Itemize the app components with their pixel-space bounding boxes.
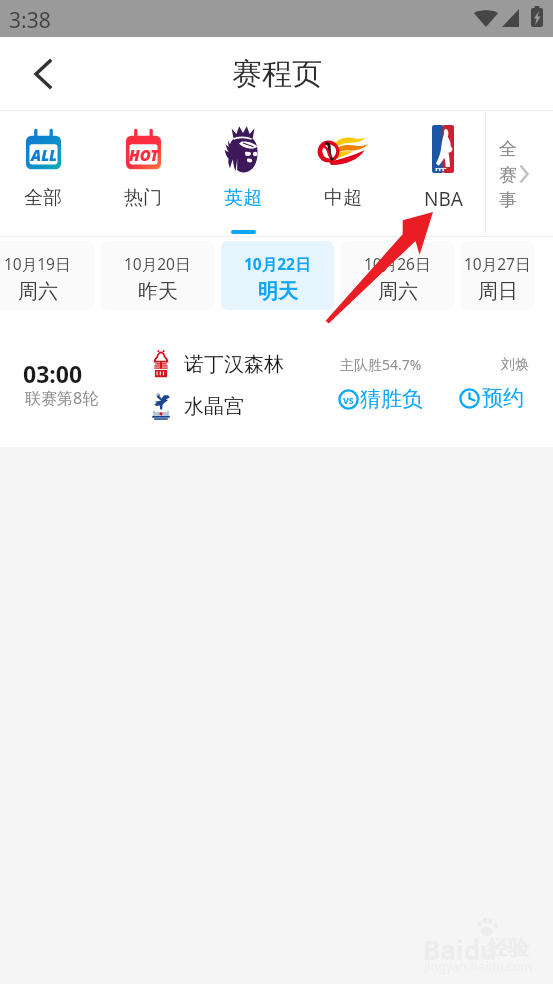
button[interactable]: ALL [0, 111, 93, 236]
staticText: 10月27日 [464, 253, 531, 274]
staticText: 周六 [18, 279, 58, 304]
staticText: NBA [424, 186, 463, 212]
button[interactable]: 10月22日 [221, 241, 334, 310]
staticText: 猜胜负 [360, 386, 423, 412]
staticText: 全部 [24, 186, 62, 210]
staticText: Baidu [423, 932, 497, 967]
staticText: ALL [31, 145, 57, 165]
button[interactable]: 10月20日 [101, 241, 214, 310]
button[interactable]: 10月26日 [341, 241, 454, 310]
staticText: 10月19日 [4, 253, 71, 274]
staticText: 经验 [487, 935, 529, 961]
staticText: HOT [129, 145, 159, 165]
staticText: 联赛第8轮 [25, 387, 99, 409]
staticText: 水晶宫 [184, 394, 244, 419]
staticText: 10月22日 [244, 253, 311, 274]
staticText: 周日 [478, 279, 518, 304]
button[interactable]: 全 赛 事 [480, 111, 547, 236]
staticText: 主队胜54.7% [340, 355, 422, 374]
staticText: 中超 [324, 186, 362, 210]
staticText: 10月26日 [364, 253, 431, 274]
staticText: 10月20日 [124, 253, 191, 274]
button[interactable]: HOT [93, 111, 193, 236]
button[interactable]: 中超 [293, 111, 393, 236]
button[interactable]: 10月19日 [0, 241, 94, 310]
staticText: 03:00 [23, 358, 83, 389]
staticText: 刘焕 [501, 356, 529, 374]
button[interactable]: 刘焕 [459, 356, 524, 411]
staticText: 预约 [482, 385, 524, 411]
staticText: 赛程页 [232, 55, 322, 93]
staticText: 明天 [258, 279, 298, 304]
button[interactable]: 03:00 [0, 314, 553, 447]
button[interactable]: Back [21, 52, 65, 96]
button[interactable]: NBA [393, 111, 493, 236]
staticText: 诺丁汉森林 [184, 352, 284, 377]
staticText: 周六 [378, 279, 418, 304]
button[interactable]: 10月27日 [461, 241, 534, 310]
staticText: 全 赛 事 [499, 138, 517, 211]
staticText: 热门 [124, 186, 162, 210]
staticText: 英超 [224, 186, 262, 210]
button[interactable]: 英超 [193, 111, 293, 236]
button[interactable]: 主队胜54.7% [338, 355, 423, 412]
staticText: 昨天 [138, 279, 178, 304]
staticText: VS [343, 394, 354, 406]
staticText: 3:38 [9, 6, 51, 35]
